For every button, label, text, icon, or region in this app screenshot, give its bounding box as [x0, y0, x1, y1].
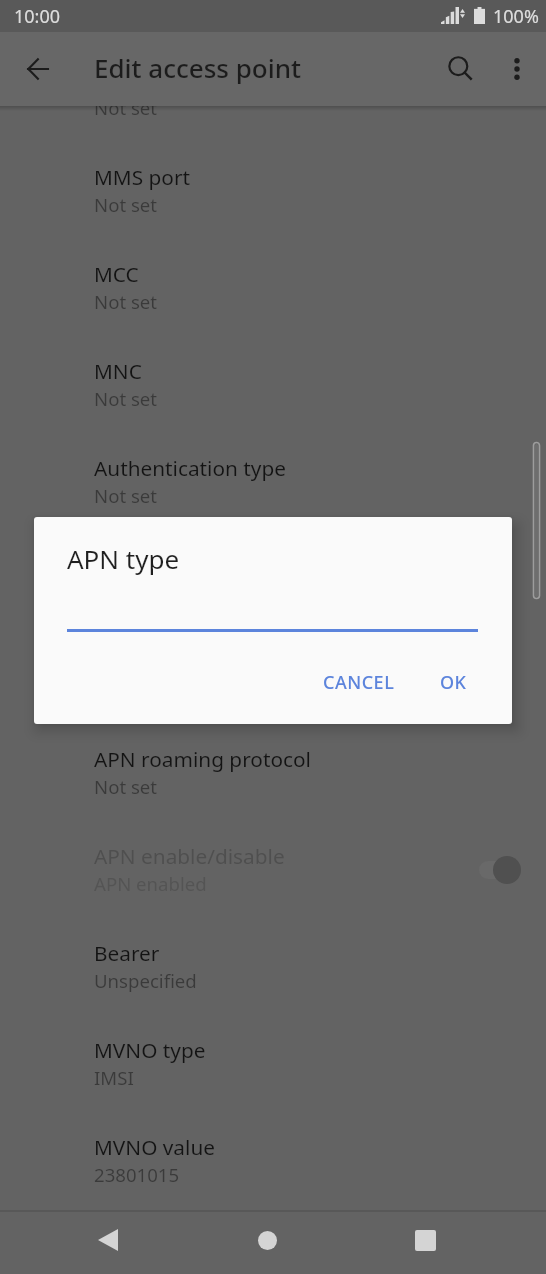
- button[interactable]: Recents: [393, 1209, 457, 1271]
- button[interactable]: Home: [235, 1209, 299, 1271]
- staticText: APN enabled: [94, 871, 207, 896]
- button[interactable]: APN enable/disable: [0, 818, 546, 915]
- button[interactable]: APN enable/disable switch: [465, 838, 531, 902]
- button[interactable]: Bearer: [0, 915, 546, 1012]
- staticText: MMS proxy: [94, 66, 204, 94]
- staticText: MCC: [94, 260, 139, 288]
- button[interactable]: MMS proxy: [0, 42, 546, 139]
- button[interactable]: MMS port: [0, 139, 546, 236]
- staticText: Edit access point: [94, 50, 301, 85]
- staticText: APN enable/disable: [94, 842, 285, 870]
- staticText: Not set: [94, 483, 158, 508]
- staticText: APN type: [94, 551, 184, 579]
- button[interactable]: Authentication type: [0, 430, 546, 527]
- staticText: Bearer: [94, 939, 160, 967]
- staticText: MVNO value: [94, 1133, 215, 1161]
- staticText: MMS port: [94, 163, 191, 191]
- staticText: APN type: [67, 541, 180, 576]
- button[interactable]: Navigate up: [14, 45, 62, 93]
- staticText: IMSI: [94, 1065, 134, 1090]
- staticText: Authentication type: [94, 454, 286, 482]
- staticText: 10:00: [14, 4, 61, 29]
- button[interactable]: APN protocol: [0, 624, 546, 721]
- staticText: MVNO type: [94, 1036, 206, 1064]
- staticText: Unspecified: [94, 968, 197, 993]
- button[interactable]: MNC: [0, 333, 546, 430]
- staticText: Not set: [94, 289, 158, 314]
- staticText: APN roaming protocol: [94, 745, 311, 773]
- staticText: Not set: [94, 95, 158, 120]
- button[interactable]: More options: [493, 45, 541, 93]
- staticText: 23801015: [94, 1162, 180, 1187]
- button[interactable]: OK: [426, 656, 481, 709]
- button[interactable]: MVNO type: [0, 1012, 546, 1109]
- button[interactable]: CANCEL: [309, 656, 409, 709]
- button[interactable]: MVNO value: [0, 1109, 546, 1206]
- staticText: Not set: [94, 192, 158, 217]
- staticText: 100%: [493, 4, 539, 29]
- button[interactable]: Back: [75, 1209, 139, 1271]
- button[interactable]: MCC: [0, 236, 546, 333]
- button[interactable]: APN roaming protocol: [0, 721, 546, 818]
- staticText: Not set: [94, 774, 158, 799]
- button[interactable]: Search: [435, 45, 483, 93]
- staticText: CANCEL: [323, 670, 395, 695]
- staticText: MNC: [94, 357, 142, 385]
- staticText: OK: [440, 670, 467, 695]
- button[interactable]: APN type: [0, 527, 546, 624]
- staticText: Not set: [94, 386, 158, 411]
